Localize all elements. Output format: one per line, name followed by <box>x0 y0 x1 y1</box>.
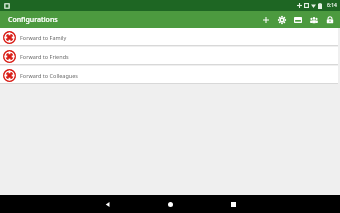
button[interactable]: Forward to Friends <box>0 47 338 65</box>
button[interactable]: Back <box>100 197 114 211</box>
button[interactable]: Forward to Colleagues <box>0 66 338 84</box>
button[interactable]: Forward to Family <box>0 28 338 46</box>
button[interactable]: Settings <box>275 13 288 26</box>
staticText: Forward to Colleagues <box>20 72 78 79</box>
staticText: Configurations <box>8 15 58 25</box>
button[interactable]: Recent apps <box>226 197 240 211</box>
button[interactable]: Home <box>163 197 177 211</box>
button[interactable]: Messages <box>291 13 304 26</box>
staticText: Forward to Friends <box>20 53 69 60</box>
button[interactable]: Contacts <box>307 13 320 26</box>
button[interactable]: Add <box>259 13 272 26</box>
staticText: 6:14 <box>327 2 337 9</box>
button[interactable]: Lock <box>323 13 336 26</box>
staticText: Forward to Family <box>20 34 67 41</box>
